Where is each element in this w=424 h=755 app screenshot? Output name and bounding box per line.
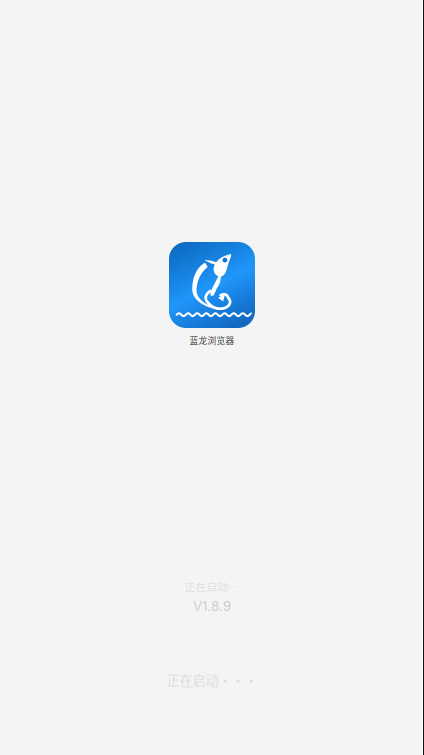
staticText: V1.8.9 bbox=[193, 598, 231, 614]
staticText: 蓝龙浏览器 bbox=[189, 334, 234, 346]
staticText: 正在启动… bbox=[184, 578, 239, 594]
staticText: 正在启动··· bbox=[166, 670, 257, 689]
